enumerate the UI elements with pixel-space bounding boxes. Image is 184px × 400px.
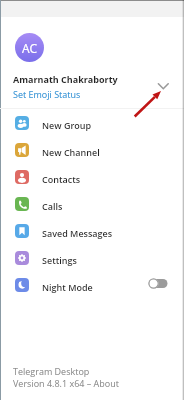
- button[interactable]: New Channel: [0, 136, 184, 163]
- staticText: New Channel: [42, 146, 100, 158]
- button[interactable]: Contacts: [0, 163, 184, 190]
- staticText: Contacts: [42, 173, 81, 185]
- staticText: Calls: [42, 200, 63, 212]
- button[interactable]: Saved Messages: [0, 217, 184, 244]
- staticText: Settings: [42, 254, 77, 266]
- staticText: AC: [22, 40, 38, 56]
- staticText: Saved Messages: [42, 227, 113, 239]
- button[interactable]: Night mode toggle, off: [148, 278, 168, 289]
- staticText: Telegram Desktop: [13, 365, 90, 377]
- button[interactable]: New Group: [0, 109, 184, 136]
- staticText: Amarnath Chakraborty: [13, 73, 118, 85]
- staticText: Version 4.8.1 x64 – About: [13, 377, 119, 389]
- button[interactable]: Expand accounts: [153, 76, 173, 96]
- staticText: New Group: [42, 119, 92, 131]
- staticText: Night Mode: [42, 281, 93, 293]
- staticText: Set Emoji Status: [13, 88, 81, 100]
- button[interactable]: AC: [0, 17, 184, 108]
- button[interactable]: Settings: [0, 244, 184, 271]
- button[interactable]: Night Mode: [0, 271, 184, 298]
- button[interactable]: Calls: [0, 190, 184, 217]
